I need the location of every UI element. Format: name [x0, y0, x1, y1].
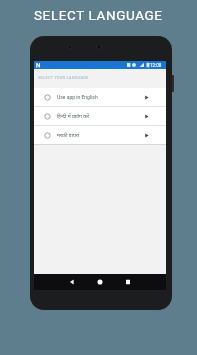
- button[interactable]: [124, 278, 132, 286]
- button[interactable]: Use app in English: [34, 88, 166, 106]
- staticText: 12:00: [150, 63, 162, 68]
- button[interactable]: [96, 278, 104, 286]
- staticText: मराठी वापरा: [57, 132, 80, 139]
- staticText: SELECT YOUR LANGUAGE: [38, 75, 89, 80]
- button[interactable]: हिन्दी में प्रयोग करें: [34, 107, 166, 125]
- staticText: Use app in English: [57, 94, 98, 100]
- button[interactable]: मराठी वापरा: [34, 126, 166, 144]
- staticText: N: [36, 61, 41, 68]
- button[interactable]: [68, 278, 76, 286]
- staticText: SELECT LANGUAGE: [34, 7, 163, 23]
- staticText: हिन्दी में प्रयोग करें: [57, 113, 89, 120]
